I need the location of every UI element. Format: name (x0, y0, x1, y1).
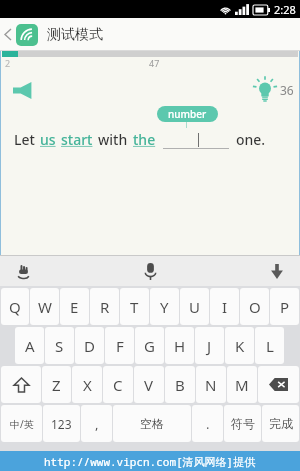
button[interactable]: T (120, 288, 149, 325)
button[interactable]: Backspace (258, 366, 299, 403)
button[interactable]: O (240, 288, 269, 325)
staticText: S (55, 336, 64, 356)
staticText: , (95, 415, 99, 433)
button[interactable]: Shift (1, 366, 41, 403)
button[interactable]: Let (14, 130, 35, 149)
button[interactable]: A (15, 327, 44, 364)
button[interactable]: 空格 (113, 405, 191, 442)
button[interactable]: . (192, 405, 223, 442)
button[interactable]: Z (42, 366, 71, 403)
staticText: 中/英 (10, 417, 34, 431)
button[interactable]: Voice input (137, 258, 163, 284)
button[interactable]: Hide keyboard (264, 258, 290, 284)
button[interactable]: one. (236, 130, 266, 149)
button[interactable]: , (81, 405, 112, 442)
staticText: T (130, 297, 139, 317)
staticText: number (168, 107, 207, 121)
button[interactable]: S (45, 327, 74, 364)
button[interactable]: F (105, 327, 134, 364)
staticText: D (84, 336, 95, 356)
staticText: 36 (280, 82, 294, 98)
button[interactable]: 符号 (224, 405, 261, 442)
staticText: 测试模式 (47, 26, 103, 44)
staticText: us (40, 130, 56, 149)
staticText: http://www.vipcn.com[清风网络]提供 (44, 454, 256, 469)
staticText: start (61, 130, 93, 149)
staticText: O (249, 297, 261, 317)
staticText: Y (160, 297, 169, 317)
staticText: 2 (5, 57, 11, 69)
staticText: M (235, 375, 249, 395)
staticText: F (116, 336, 124, 356)
staticText: Z (52, 375, 61, 395)
button[interactable]: X (72, 366, 102, 403)
staticText: A (25, 336, 35, 356)
button[interactable]: Play audio (10, 79, 36, 101)
button[interactable]: G (135, 327, 164, 364)
button[interactable]: C (103, 366, 133, 403)
staticText: the (133, 130, 156, 149)
button[interactable]: J (195, 327, 224, 364)
staticText: P (280, 297, 290, 317)
button[interactable]: 123 (43, 405, 80, 442)
button[interactable]: L (255, 327, 284, 364)
button[interactable]: Hint (250, 75, 280, 105)
staticText: one. (236, 130, 266, 149)
staticText: 空格 (140, 416, 164, 431)
staticText: B (175, 375, 185, 395)
staticText: W (38, 297, 52, 317)
staticText: C (113, 375, 123, 395)
staticText: Let (14, 130, 35, 149)
button[interactable]: E (60, 288, 89, 325)
staticText: I (222, 297, 228, 317)
button[interactable]: Answer blank (163, 131, 229, 149)
button[interactable]: M (227, 366, 257, 403)
button[interactable]: U (180, 288, 209, 325)
staticText: with (98, 130, 128, 149)
staticText: 符号 (231, 416, 255, 431)
button[interactable]: 中/英 (1, 405, 42, 442)
button[interactable]: us (40, 130, 56, 149)
staticText: V (144, 375, 154, 395)
button[interactable]: the (133, 130, 156, 149)
button[interactable]: I (210, 288, 239, 325)
button[interactable]: N (196, 366, 226, 403)
button[interactable]: R (90, 288, 119, 325)
button[interactable]: K (225, 327, 254, 364)
button[interactable]: with (98, 130, 128, 149)
button[interactable]: B (165, 366, 195, 403)
staticText: K (235, 336, 245, 356)
button[interactable]: Back (0, 18, 16, 51)
staticText: 123 (51, 416, 72, 432)
button[interactable]: D (75, 327, 104, 364)
staticText: J (207, 336, 212, 356)
staticText: N (205, 375, 217, 395)
staticText: H (174, 336, 186, 356)
staticText: Q (9, 297, 21, 317)
staticText: 47 (149, 57, 160, 69)
staticText: G (144, 336, 155, 356)
staticText: U (189, 297, 200, 317)
staticText: X (83, 375, 92, 395)
button[interactable]: Q (1, 288, 29, 325)
button[interactable]: number (157, 106, 218, 122)
staticText: 2:28 (274, 2, 296, 17)
staticText: L (266, 336, 274, 356)
staticText: . (206, 415, 210, 433)
button[interactable]: W (30, 288, 59, 325)
button[interactable]: Handwriting input (10, 258, 36, 284)
button[interactable]: P (270, 288, 299, 325)
staticText: E (70, 297, 79, 317)
button[interactable]: App icon (16, 24, 38, 46)
button[interactable]: start (61, 130, 93, 149)
button[interactable]: Y (150, 288, 179, 325)
button[interactable]: H (165, 327, 194, 364)
button[interactable]: 完成 (262, 405, 299, 442)
button[interactable]: V (134, 366, 164, 403)
staticText: 完成 (269, 416, 293, 431)
staticText: R (100, 297, 110, 317)
